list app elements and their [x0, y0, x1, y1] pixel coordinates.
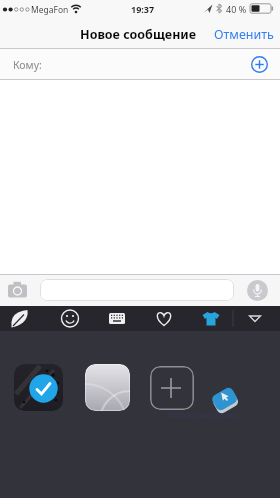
staticText: Отменить [214, 26, 274, 43]
button[interactable] [0, 306, 46, 331]
button[interactable] [92, 306, 139, 331]
staticText: 40 % [226, 3, 247, 15]
staticText: 19:37 [131, 3, 155, 15]
button[interactable]: Отменить [214, 26, 280, 43]
staticText: MegaFon [31, 4, 69, 16]
button[interactable] [247, 280, 268, 301]
button[interactable]: Кому: [0, 49, 280, 80]
button[interactable] [208, 385, 240, 417]
button[interactable] [186, 306, 233, 331]
button[interactable] [233, 306, 280, 331]
button[interactable] [14, 364, 63, 411]
button[interactable] [46, 306, 92, 331]
button[interactable] [40, 279, 234, 301]
button[interactable] [150, 366, 194, 410]
staticText: 4PDA.to/forum/index [168, 411, 238, 421]
button[interactable] [251, 56, 268, 73]
button[interactable] [139, 306, 186, 331]
button[interactable] [85, 364, 130, 411]
staticText: Кому: [13, 58, 42, 72]
button[interactable] [7, 281, 31, 299]
staticText: Новое сообщение [80, 26, 197, 43]
